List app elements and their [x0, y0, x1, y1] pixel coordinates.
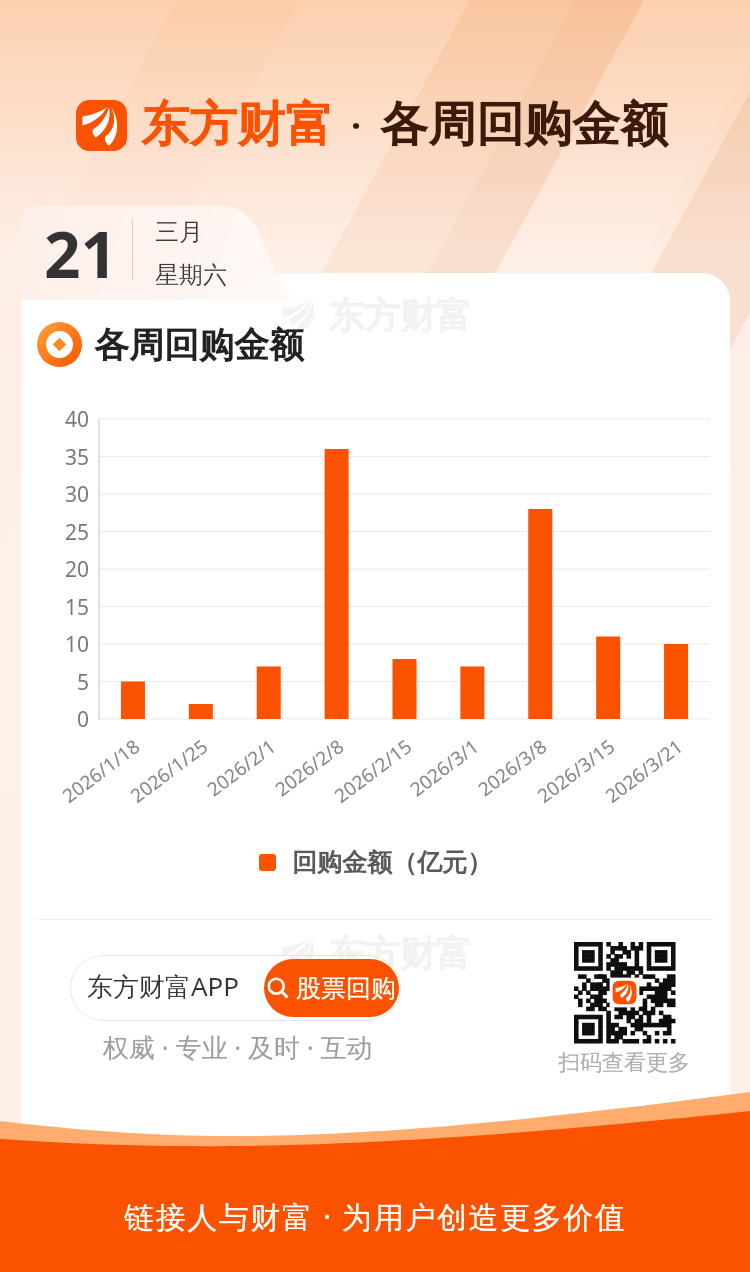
staticText: 回购金额（亿元） — [292, 847, 492, 878]
staticText: 0 — [29, 705, 89, 734]
staticText: 2026/1/25 — [101, 733, 213, 826]
staticText: 股票回购 — [296, 973, 396, 1004]
other: Search — [267, 977, 289, 999]
staticText: 东方财富 — [328, 931, 472, 976]
staticText: 25 — [29, 518, 89, 547]
staticText: 东方财富 — [328, 293, 472, 338]
staticText: 各周回购金额 — [94, 323, 304, 367]
staticText: 三月 — [155, 217, 203, 247]
button[interactable]: Search — [264, 959, 399, 1017]
staticText: 2026/3/15 — [508, 733, 620, 826]
staticText: 35 — [29, 443, 89, 472]
staticText: 30 — [29, 480, 89, 509]
staticText: 链接人与财富 · 为用户创造更多价值 — [124, 1196, 627, 1237]
staticText: · — [351, 101, 362, 150]
staticText: 20 — [29, 555, 89, 584]
staticText: 2026/3/8 — [440, 733, 552, 826]
staticText: 各周回购金额 — [380, 95, 668, 155]
staticText: 星期六 — [155, 260, 227, 290]
staticText: 东方财富 — [141, 95, 333, 155]
staticText: 40 — [29, 405, 89, 434]
staticText: 10 — [29, 630, 89, 659]
staticText: 2026/2/8 — [237, 733, 349, 826]
staticText: 5 — [29, 668, 89, 697]
staticText: 权威 · 专业 · 及时 · 互动 — [103, 1029, 373, 1065]
staticText: 2026/1/18 — [33, 733, 145, 826]
staticText: 21 — [44, 210, 118, 297]
staticText: 15 — [29, 593, 89, 622]
staticText: 2026/2/15 — [305, 733, 417, 826]
button[interactable]: 东方财富APP — [70, 955, 401, 1021]
staticText: 2026/3/1 — [372, 733, 484, 826]
staticText: 2026/3/21 — [576, 733, 688, 826]
staticText: 扫码查看更多 — [558, 1049, 690, 1077]
staticText: 2026/2/1 — [169, 733, 281, 826]
staticText: 东方财富APP — [87, 968, 240, 1004]
